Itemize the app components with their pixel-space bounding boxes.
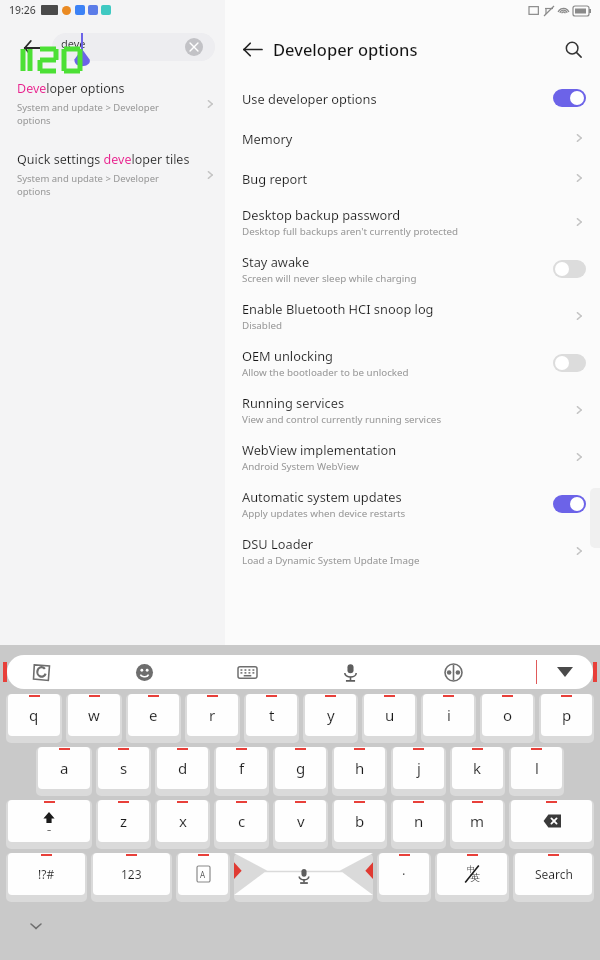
staticText: Developer options [17, 80, 125, 97]
staticText: Load a Dynamic System Update Image [242, 554, 420, 567]
button[interactable]: l [509, 747, 564, 796]
button[interactable]: Stay awake [225, 245, 600, 292]
button[interactable]: c [214, 800, 269, 849]
staticText: x [179, 811, 187, 831]
button[interactable]: x [155, 800, 210, 849]
staticText: q [29, 705, 39, 725]
button[interactable]: Off [553, 260, 586, 278]
staticText: g [296, 758, 306, 778]
button[interactable]: m [450, 800, 505, 849]
button[interactable]: DSU Loader [225, 527, 600, 574]
button[interactable]: · [377, 853, 431, 902]
button[interactable]: v [273, 800, 328, 849]
button[interactable]: q [6, 694, 62, 743]
button[interactable]: Use developer options [225, 78, 600, 118]
button[interactable]: On [553, 495, 586, 513]
button[interactable]: Back [20, 36, 44, 60]
staticText: Screen will never sleep while charging [242, 272, 417, 285]
button[interactable]: s [96, 747, 151, 796]
button[interactable]: p [539, 694, 594, 743]
staticText: c [238, 811, 246, 831]
button[interactable]: Space [234, 853, 373, 902]
staticText: k [473, 758, 482, 778]
button[interactable]: y [303, 694, 358, 743]
staticText: System and update > Developer options [17, 101, 159, 127]
button[interactable]: 中 [435, 853, 509, 902]
staticText: s [120, 758, 128, 778]
button[interactable]: j [391, 747, 446, 796]
staticText: deve [61, 36, 86, 51]
staticText: d [178, 758, 188, 778]
button[interactable]: Clear [185, 38, 203, 56]
button[interactable]: OEM unlocking [225, 339, 600, 386]
staticText: 中 [467, 864, 476, 875]
staticText: Search [535, 866, 573, 882]
staticText: i [447, 705, 451, 725]
staticText: u [385, 705, 395, 725]
button[interactable]: Quick settings developer tiles [0, 145, 225, 204]
button[interactable]: Enable Bluetooth HCI snoop log [225, 292, 600, 339]
button[interactable] [52, 33, 215, 61]
staticText: Quick settings developer tiles [17, 151, 190, 168]
button[interactable]: Sogou [21, 655, 61, 689]
staticText: b [355, 811, 365, 831]
button[interactable]: WebView implementation [225, 433, 600, 480]
button[interactable]: Collapse [537, 655, 593, 689]
button[interactable]: A [176, 853, 230, 902]
button[interactable]: n [391, 800, 446, 849]
button[interactable]: e [126, 694, 181, 743]
staticText: a [46, 824, 53, 831]
button[interactable]: Running services [225, 386, 600, 433]
button[interactable]: t [244, 694, 299, 743]
staticText: Disabled [242, 319, 282, 332]
button[interactable]: 123 [91, 853, 172, 902]
button[interactable]: Back [239, 36, 265, 62]
button[interactable]: Automatic system updates [225, 480, 600, 527]
button[interactable]: Off [553, 354, 586, 372]
button[interactable]: h [332, 747, 387, 796]
button[interactable]: a [36, 747, 92, 796]
staticText: Running services [242, 394, 345, 411]
button[interactable]: u [362, 694, 417, 743]
button[interactable]: Hide keyboard [26, 916, 46, 936]
button[interactable]: Search [513, 853, 594, 902]
button[interactable]: d [155, 747, 210, 796]
staticText: 英 [470, 871, 480, 884]
button[interactable]: Search [560, 36, 586, 62]
button[interactable]: a [6, 800, 92, 849]
button[interactable]: w [66, 694, 122, 743]
button[interactable]: o [480, 694, 535, 743]
staticText: p [562, 705, 572, 725]
button[interactable]: !?# [6, 853, 87, 902]
button[interactable]: r [185, 694, 240, 743]
button[interactable]: Settings [433, 655, 473, 689]
staticText: Allow the bootloader to be unlocked [242, 366, 409, 379]
staticText: e [149, 705, 158, 725]
staticText: m [470, 811, 485, 831]
staticText: Desktop full backups aren't currently pr… [242, 225, 459, 238]
button[interactable]: Developer options [0, 74, 225, 133]
staticText: f [239, 758, 245, 778]
button[interactable]: Desktop backup password [225, 198, 600, 245]
button[interactable]: Memory [225, 118, 600, 158]
staticText: 19:26 [9, 3, 36, 17]
button[interactable]: Bug report [225, 158, 600, 198]
button[interactable]: i [421, 694, 476, 743]
button[interactable] [509, 800, 594, 849]
button[interactable]: Voice input [330, 655, 370, 689]
button[interactable]: z [96, 800, 151, 849]
staticText: A [200, 869, 206, 880]
button[interactable]: b [332, 800, 387, 849]
button[interactable]: k [450, 747, 505, 796]
button[interactable]: g [273, 747, 328, 796]
button[interactable]: Keyboard [227, 655, 267, 689]
button[interactable]: On [553, 89, 586, 107]
staticText: o [503, 705, 513, 725]
button[interactable]: Emoji [124, 655, 164, 689]
staticText: OEM unlocking [242, 347, 333, 364]
staticText: Stay awake [242, 253, 310, 270]
button[interactable]: f [214, 747, 269, 796]
staticText: WebView implementation [242, 441, 397, 458]
staticText: v [297, 811, 305, 831]
staticText: Use developer options [242, 90, 377, 107]
